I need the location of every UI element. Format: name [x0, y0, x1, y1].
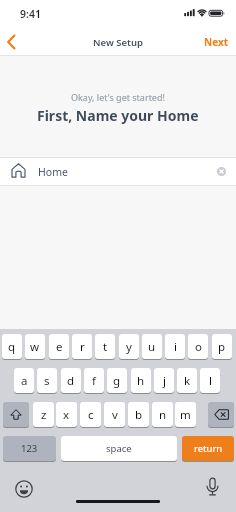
button[interactable]: 123 — [3, 436, 56, 461]
button[interactable]: w — [25, 334, 45, 359]
button[interactable] — [3, 402, 29, 427]
button[interactable]: t — [95, 334, 115, 359]
button[interactable] — [204, 477, 221, 498]
button[interactable]: c — [80, 402, 101, 427]
button[interactable]: o — [188, 334, 208, 359]
staticText: d — [67, 373, 75, 389]
staticText: m — [180, 407, 191, 423]
staticText: v — [112, 407, 118, 423]
staticText: First, Name your Home — [37, 106, 199, 125]
button[interactable]: f — [84, 368, 104, 393]
staticText: c — [88, 407, 94, 423]
button[interactable]: j — [154, 368, 174, 393]
button[interactable]: h — [131, 368, 151, 393]
staticText: x — [63, 407, 70, 423]
button[interactable]: l — [200, 368, 220, 393]
staticText: b — [135, 407, 143, 423]
button[interactable]: z — [33, 402, 54, 427]
staticText: z — [41, 407, 47, 423]
staticText: t — [103, 339, 108, 355]
button[interactable] — [15, 480, 33, 498]
button[interactable] — [208, 402, 234, 427]
staticText: Okay, let's get started! — [71, 91, 165, 103]
button[interactable]: g — [107, 368, 127, 393]
staticText: j — [163, 373, 166, 389]
button[interactable] — [216, 166, 227, 177]
button[interactable]: space — [61, 436, 177, 461]
staticText: o — [195, 339, 202, 355]
staticText: g — [113, 373, 121, 389]
staticText: w — [30, 339, 40, 355]
button[interactable]: s — [37, 368, 57, 393]
staticText: y — [126, 339, 132, 355]
staticText: 123 — [21, 442, 38, 455]
button[interactable]: y — [119, 334, 139, 359]
staticText: l — [209, 373, 212, 389]
staticText: q — [8, 339, 16, 355]
button[interactable] — [0, 157, 236, 186]
button[interactable]: i — [165, 334, 185, 359]
button[interactable]: a — [14, 368, 34, 393]
staticText: 9:41 — [20, 7, 41, 21]
staticText: i — [174, 339, 177, 355]
button[interactable]: Next — [200, 31, 232, 53]
button[interactable]: b — [128, 402, 149, 427]
button[interactable]: q — [2, 334, 22, 359]
button[interactable]: m — [175, 402, 196, 427]
button[interactable]: n — [152, 402, 173, 427]
staticText: r — [80, 339, 85, 355]
button[interactable]: p — [212, 334, 232, 359]
button[interactable]: r — [72, 334, 92, 359]
button[interactable]: e — [49, 334, 69, 359]
button[interactable]: k — [177, 368, 197, 393]
staticText: space — [106, 442, 132, 455]
button[interactable]: d — [61, 368, 81, 393]
staticText: k — [184, 373, 191, 389]
staticText: h — [137, 373, 145, 389]
button[interactable]: x — [56, 402, 77, 427]
staticText: u — [148, 339, 156, 355]
staticText: e — [56, 339, 63, 355]
button[interactable] — [2, 31, 20, 53]
staticText: a — [21, 373, 28, 389]
staticText: n — [159, 407, 167, 423]
staticText: Next — [204, 35, 229, 49]
staticText: Home — [38, 165, 68, 179]
button[interactable]: v — [104, 402, 125, 427]
staticText: s — [44, 373, 50, 389]
staticText: New Setup — [93, 36, 143, 49]
button[interactable]: return — [182, 436, 234, 461]
staticText: return — [194, 442, 223, 455]
button[interactable]: u — [142, 334, 162, 359]
staticText: p — [218, 339, 226, 355]
staticText: f — [92, 373, 96, 389]
